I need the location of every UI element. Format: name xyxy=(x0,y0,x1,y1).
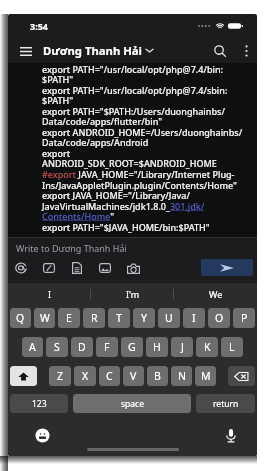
staticText: A xyxy=(29,340,36,354)
staticText: Z xyxy=(57,369,64,383)
staticText: K xyxy=(204,340,211,354)
button[interactable]: B xyxy=(147,366,168,386)
staticText: Contents/Home" xyxy=(42,210,115,222)
button[interactable]: X xyxy=(74,366,96,386)
button[interactable]: F xyxy=(96,337,118,357)
staticText: N xyxy=(178,369,186,383)
staticText: S xyxy=(54,340,60,354)
staticText: #export JAVA_HOME="/Library/Internet Plu… xyxy=(42,168,235,180)
staticText: JavaVirtualMachines/jdk1.8.0_301.jdk/ xyxy=(42,200,205,212)
staticText: F xyxy=(104,340,110,354)
button[interactable]: S xyxy=(46,337,68,357)
button[interactable]: Mention xyxy=(13,260,29,276)
staticText: export PATH="/usr/local/opt/php@7.4/sbin… xyxy=(42,84,228,96)
button[interactable]: Document xyxy=(69,260,85,276)
button[interactable]: We xyxy=(174,283,257,305)
staticText: E xyxy=(66,311,72,325)
button[interactable]: K xyxy=(196,337,218,357)
staticText: X xyxy=(82,369,89,383)
staticText: G xyxy=(128,340,136,354)
button[interactable]: N xyxy=(171,366,192,386)
button[interactable]: Backspace xyxy=(228,366,255,386)
staticText: export PATH="$JAVA_HOME/bin:$PATH" xyxy=(42,221,210,233)
button[interactable]: Send xyxy=(201,259,253,276)
button[interactable]: Formatting xyxy=(41,260,57,276)
staticText: I xyxy=(48,288,52,300)
button[interactable]: U xyxy=(158,308,180,328)
staticText: T xyxy=(116,311,122,325)
staticText: export PATH="$PATH:/Users/duonghainbs/ xyxy=(42,105,225,117)
staticText: export xyxy=(42,147,71,159)
staticText: export JAVA_HOME="/Library/Java/ xyxy=(42,189,190,201)
staticText: Write to Dương Thanh Hải xyxy=(16,242,127,254)
staticText: return xyxy=(213,398,239,410)
staticText: P xyxy=(241,311,248,325)
button[interactable]: L xyxy=(221,337,243,357)
button[interactable]: Shift xyxy=(10,366,37,386)
staticText: I'm xyxy=(126,288,140,300)
button[interactable]: Search xyxy=(210,41,230,61)
button[interactable]: return xyxy=(196,394,255,413)
staticText: O xyxy=(215,311,224,325)
button[interactable]: Q xyxy=(10,308,31,328)
staticText: R xyxy=(91,311,98,325)
staticText: 3:54 xyxy=(30,20,48,32)
staticText: export PATH="/usr/local/opt/php@7.4/bin: xyxy=(42,63,223,75)
staticText: I xyxy=(192,311,196,325)
staticText: L xyxy=(229,340,235,354)
button[interactable]: D xyxy=(71,337,93,357)
button[interactable]: P xyxy=(233,308,255,328)
button[interactable]: Z xyxy=(49,366,71,386)
button[interactable]: I'm xyxy=(91,283,174,305)
button[interactable]: J xyxy=(171,337,193,357)
button[interactable]: O xyxy=(208,308,230,328)
button[interactable]: Y xyxy=(133,308,155,328)
button[interactable]: Voice input xyxy=(222,427,239,444)
staticText: ANDROID_SDK_ROOT=$ANDROID_HOME xyxy=(42,157,217,169)
staticText: Y xyxy=(141,311,147,325)
staticText: B xyxy=(154,369,161,383)
staticText: We xyxy=(209,288,223,300)
staticText: Ins/JavaAppletPlugin.plugin/Contents/Hom… xyxy=(42,179,237,191)
staticText: C xyxy=(106,369,113,383)
button[interactable]: More options xyxy=(239,44,253,58)
staticText: Data/code/apps/flutter/bin" xyxy=(42,115,163,127)
button[interactable]: Photo xyxy=(97,260,113,276)
button[interactable]: M xyxy=(195,366,216,386)
button[interactable]: 123 xyxy=(10,394,68,413)
button[interactable]: Emoji xyxy=(34,427,51,444)
button[interactable]: R xyxy=(83,308,105,328)
staticText: U xyxy=(165,311,173,325)
staticText: H xyxy=(153,340,161,354)
staticText: V xyxy=(130,369,137,383)
staticText: $PATH" xyxy=(42,94,74,106)
button[interactable]: I xyxy=(8,283,91,305)
button[interactable]: V xyxy=(123,366,144,386)
staticText: D xyxy=(78,340,86,354)
staticText: Q xyxy=(16,311,25,325)
button[interactable]: Menu xyxy=(16,41,36,61)
button[interactable]: G xyxy=(121,337,143,357)
button[interactable]: T xyxy=(108,308,130,328)
staticText: 123 xyxy=(32,398,47,410)
staticText: J xyxy=(181,340,184,354)
button[interactable]: Dương Thanh Hải xyxy=(43,43,153,58)
button[interactable]: E xyxy=(58,308,80,328)
staticText: W xyxy=(40,311,50,325)
staticText: Dương Thanh Hải xyxy=(43,43,142,58)
staticText: $PATH" xyxy=(42,73,74,85)
button[interactable]: I xyxy=(183,308,205,328)
staticText: export ANDROID_HOME=/Users/duonghainbs/ xyxy=(42,126,243,138)
button[interactable]: H xyxy=(146,337,168,357)
staticText: M xyxy=(201,369,211,383)
staticText: Data/code/apps/Android xyxy=(42,136,149,148)
button[interactable]: Camera xyxy=(125,260,141,276)
button[interactable]: space xyxy=(73,394,191,413)
staticText: space xyxy=(121,398,144,410)
button[interactable]: A xyxy=(22,337,43,357)
button[interactable]: W xyxy=(34,308,55,328)
button[interactable]: C xyxy=(99,366,120,386)
